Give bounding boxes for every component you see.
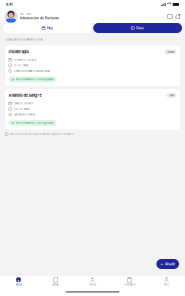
staticText: Añadir bbox=[165, 262, 175, 266]
button[interactable]: Hoy bbox=[3, 23, 92, 33]
staticText: Manual bbox=[52, 283, 59, 286]
staticText: 13:00 horas bbox=[14, 64, 28, 67]
button[interactable]: Fisioterapia bbox=[5, 45, 180, 86]
staticText: Lunes bbox=[169, 94, 174, 97]
staticText: Mañana bbox=[167, 50, 174, 53]
button[interactable]: Mensajes bbox=[167, 14, 172, 19]
staticText: Hoy bbox=[47, 26, 53, 30]
staticText: Información de Paciente bbox=[20, 16, 59, 20]
staticText: Hola, Laura bbox=[20, 13, 31, 15]
staticText: Lunes 13 de abril bbox=[14, 102, 34, 105]
button[interactable]: Citas bbox=[93, 23, 182, 33]
button[interactable]: Inicio bbox=[0, 275, 37, 288]
staticText: Análisis de sangre bbox=[8, 93, 41, 98]
staticText: Viernes 10 de abril bbox=[14, 58, 37, 61]
button[interactable]: Notificaciones bbox=[175, 14, 180, 19]
staticText: 9:41 bbox=[6, 2, 12, 7]
staticText: Tutores bbox=[89, 283, 96, 286]
button[interactable]: Perfil bbox=[148, 275, 185, 288]
staticText: Recordatorio configurado bbox=[16, 121, 54, 124]
staticText: Inicio bbox=[15, 283, 21, 286]
staticText: Perfil bbox=[163, 283, 169, 286]
staticText: Recordatorio configurado bbox=[16, 78, 54, 81]
staticText: Centro de Rehabilitación Salud bbox=[14, 70, 50, 73]
staticText: Laboratorio Central bbox=[14, 113, 35, 116]
staticText: Para citas de más de 7 días en adelante … bbox=[10, 133, 73, 135]
button[interactable]: Análisis de sangre bbox=[5, 89, 180, 129]
button[interactable]: Tutores bbox=[74, 275, 111, 288]
staticText: Citas bbox=[136, 26, 144, 30]
staticText: Fisioterapia bbox=[8, 49, 28, 54]
staticText: Calendario bbox=[124, 283, 135, 286]
button[interactable]: + bbox=[156, 259, 179, 269]
staticText: Citas para los próximos 7 días bbox=[5, 38, 42, 41]
button[interactable]: Calendario bbox=[111, 275, 148, 288]
button[interactable]: Manual bbox=[37, 275, 74, 288]
staticText: + bbox=[160, 262, 163, 266]
staticText: 08:30 horas bbox=[14, 107, 29, 110]
